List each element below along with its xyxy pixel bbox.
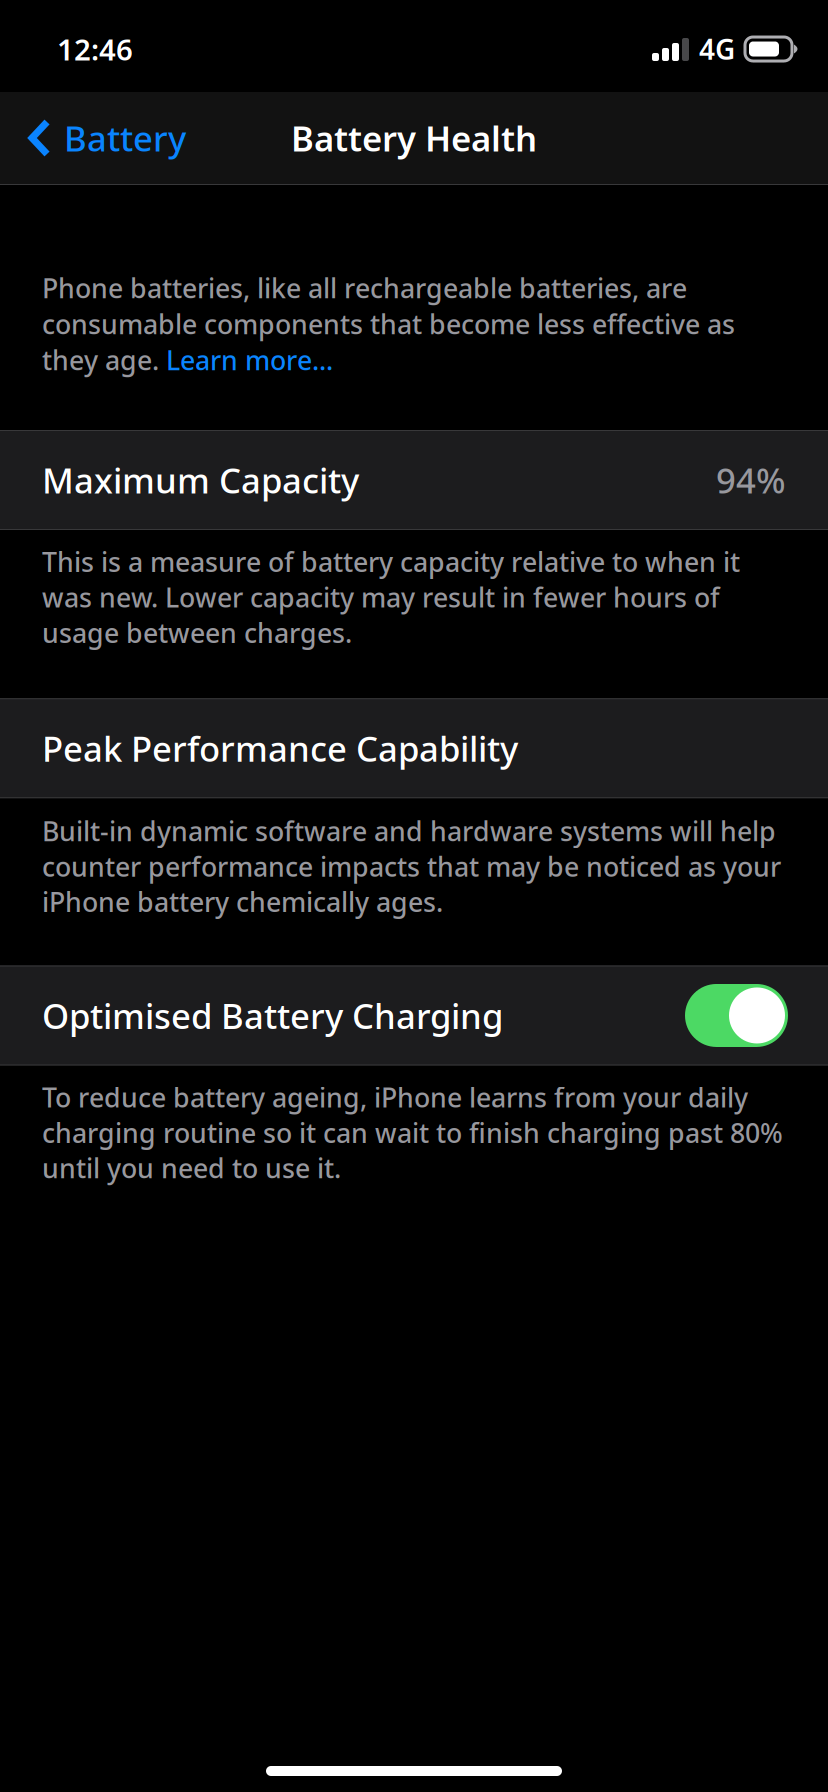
- staticText: Optimised Battery Charging: [42, 992, 503, 1038]
- staticText: Built-in dynamic software and hardware s…: [42, 813, 781, 919]
- staticText: 4G: [699, 30, 735, 68]
- staticText: Maximum Capacity: [42, 457, 359, 503]
- staticText: consumable components that become less e…: [42, 306, 735, 342]
- staticText: Peak Performance Capability: [42, 725, 518, 771]
- staticText: To reduce battery ageing, iPhone learns …: [42, 1079, 783, 1186]
- staticText: This is a measure of battery capacity re…: [42, 544, 740, 650]
- button[interactable]: Battery: [0, 92, 206, 184]
- staticText: Learn more...: [166, 342, 333, 378]
- staticText: 12:46: [57, 29, 133, 68]
- staticText: Battery Health: [291, 115, 537, 161]
- staticText: Battery: [64, 115, 186, 161]
- staticText: they age.: [42, 342, 166, 378]
- staticText: Phone batteries, like all rechargeable b…: [42, 270, 687, 306]
- staticText: 94%: [716, 457, 786, 503]
- button[interactable]: Optimised Battery Charging: [685, 984, 788, 1047]
- button[interactable]: Learn more...: [166, 342, 333, 378]
